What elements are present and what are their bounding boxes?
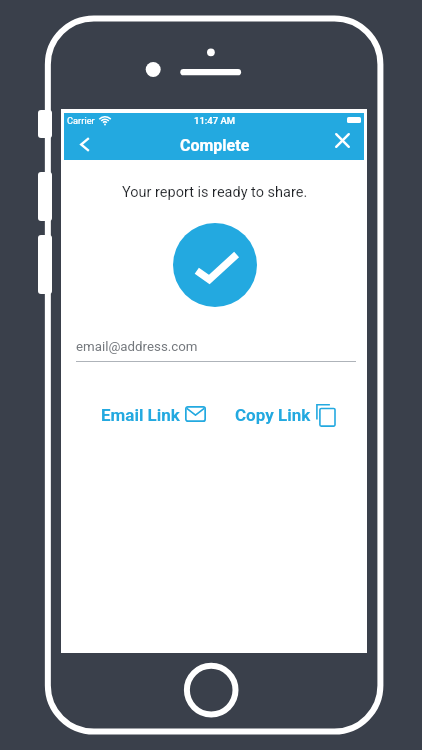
staticText: Copy Link xyxy=(235,405,311,425)
staticText: Carrier xyxy=(67,115,95,126)
button[interactable]: Back xyxy=(68,132,98,157)
button[interactable]: Close xyxy=(326,128,359,157)
staticText: email@address.com xyxy=(76,339,198,355)
button[interactable]: email@address.com xyxy=(76,331,356,362)
staticText: 11:47 AM xyxy=(194,115,236,126)
button[interactable]: Email Link xyxy=(97,400,210,428)
staticText: Complete xyxy=(180,136,250,155)
button[interactable]: Copy Link xyxy=(231,400,343,428)
staticText: Your report is ready to share. xyxy=(122,184,308,201)
staticText: Email Link xyxy=(101,405,180,425)
